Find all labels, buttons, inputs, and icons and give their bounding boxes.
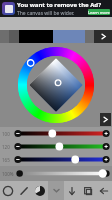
staticText: The canvas will be wider. [17, 10, 75, 17]
button[interactable]: Color wheel [0, 181, 16, 200]
button[interactable]: 120 [0, 140, 112, 153]
button[interactable]: More [100, 113, 111, 126]
button[interactable]: 100 [0, 127, 112, 140]
button[interactable]: Collapse [48, 181, 64, 200]
button[interactable]: 100% [0, 166, 112, 181]
staticText: 100 [2, 131, 14, 137]
staticText: 165 [2, 157, 14, 163]
staticText: 120 [2, 144, 14, 150]
staticText: Learn more [88, 10, 110, 15]
button[interactable]: Color wheel [18, 47, 94, 123]
button[interactable]: Expand [94, 30, 112, 43]
button[interactable]: Download [64, 181, 80, 200]
button[interactable]: Learn more [88, 9, 110, 15]
button[interactable]: Color [32, 181, 48, 200]
staticText: You want to remove the Ad? [17, 1, 102, 9]
button[interactable]: Brush [16, 181, 32, 200]
button[interactable]: Layers [80, 181, 96, 200]
button[interactable]: You want to remove the Ad? [0, 0, 112, 17]
button[interactable]: 165 [0, 153, 112, 166]
staticText: 100% [2, 171, 16, 177]
button[interactable]: Back [96, 181, 112, 200]
